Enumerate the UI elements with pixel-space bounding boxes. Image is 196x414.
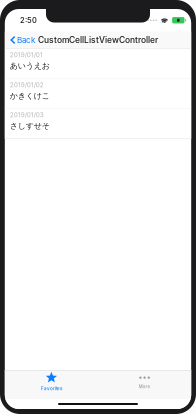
button[interactable]: Back [5, 31, 40, 48]
staticText: さしすせそ [10, 121, 50, 131]
staticText: CustomCellListViewController [38, 35, 158, 45]
staticText: 2019/01/03 [10, 111, 44, 119]
staticText: Back [17, 35, 35, 45]
button[interactable]: 2019/01/01 [5, 48, 191, 78]
staticText: 2019/01/01 [10, 51, 43, 59]
staticText: Favorites [41, 386, 62, 391]
button[interactable]: More [98, 370, 191, 399]
button[interactable]: 2019/01/02 [5, 78, 191, 108]
staticText: 2:50 [20, 16, 37, 25]
staticText: More [139, 384, 151, 389]
staticText: 2019/01/02 [10, 81, 44, 89]
staticText: あいうえお [10, 61, 50, 71]
button[interactable]: Favorites [5, 370, 98, 399]
staticText: かきくけこ [10, 91, 50, 101]
button[interactable]: 2019/01/03 [5, 108, 191, 138]
